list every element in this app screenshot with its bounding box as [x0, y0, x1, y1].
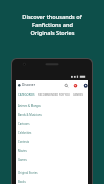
staticText: Discover	[22, 83, 36, 87]
button[interactable]: Games	[16, 155, 88, 164]
button[interactable]: Discover	[16, 80, 88, 90]
staticText: Discover thousands of	[22, 13, 82, 21]
button[interactable]: Bands & Musicians	[16, 110, 88, 119]
staticText: Movies	[18, 149, 27, 153]
staticText: Cartoons	[18, 122, 30, 126]
button[interactable]: GENRES	[73, 93, 83, 97]
staticText: Animes & Mangas	[18, 104, 41, 108]
button[interactable]: Cartoons	[16, 119, 88, 128]
staticText: Books	[18, 180, 26, 184]
staticText: Games	[18, 158, 27, 162]
staticText: Original Stories	[18, 171, 38, 175]
button[interactable]: Books	[16, 177, 88, 184]
button[interactable]: Celebrities	[16, 128, 88, 137]
staticText: Originals Stories	[30, 29, 75, 37]
staticText: Bands & Musicians	[18, 113, 42, 117]
button[interactable]: RECOMMENDED FOR YOU	[38, 93, 70, 97]
staticText: Celebrities	[18, 131, 32, 135]
staticText: Fanfictions and	[32, 21, 73, 29]
button[interactable]: CATEGORIES	[18, 93, 35, 97]
button[interactable]: Original Stories	[16, 168, 88, 177]
staticText: Contests	[18, 140, 30, 144]
button[interactable]: Contests	[16, 137, 88, 146]
button[interactable]: Animes & Mangas	[16, 101, 88, 110]
button[interactable]: Movies	[16, 146, 88, 155]
